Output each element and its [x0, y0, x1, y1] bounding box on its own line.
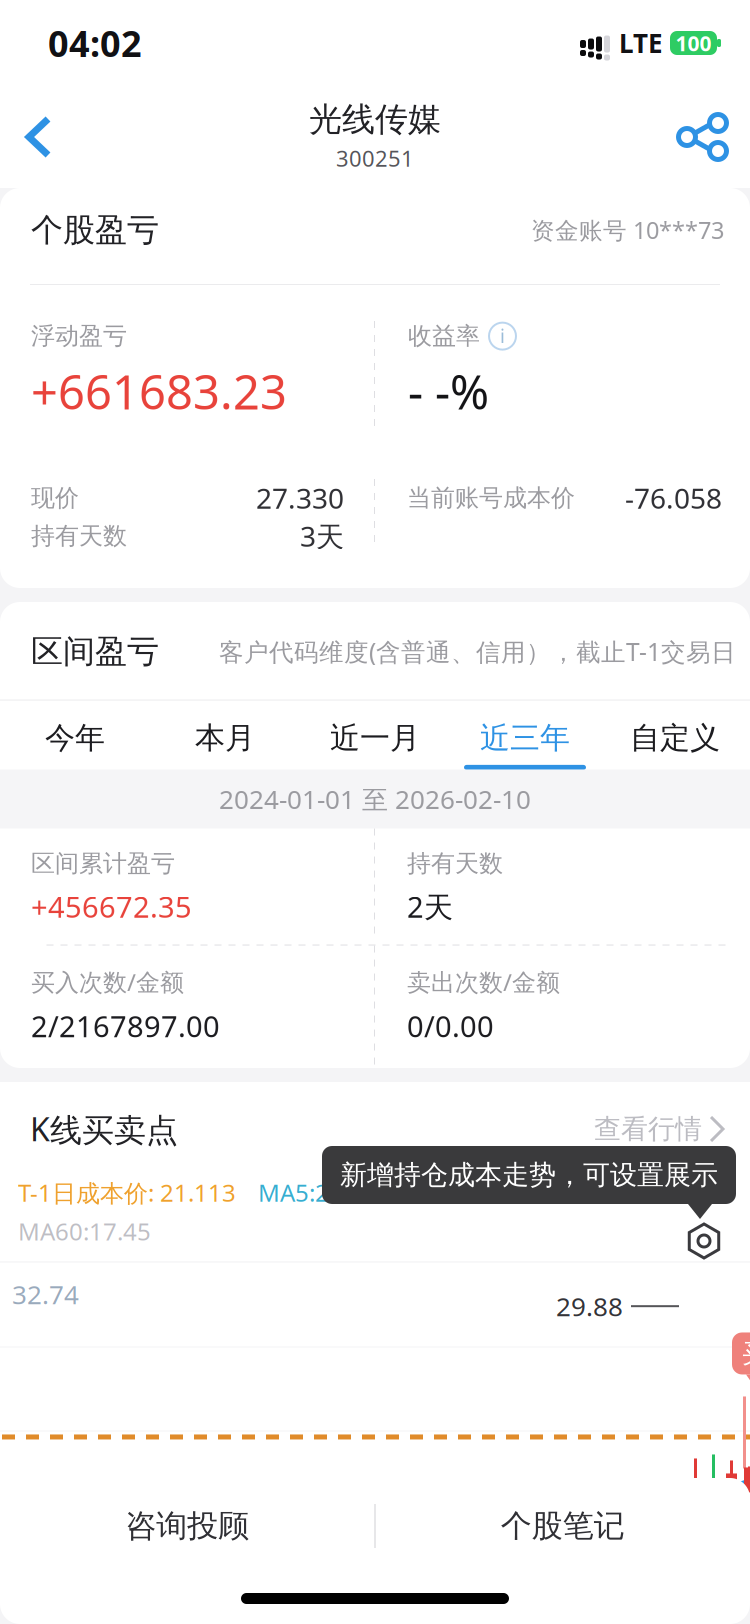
button[interactable]: 查看行情	[594, 1102, 728, 1156]
staticText: 32.74	[12, 1276, 79, 1312]
staticText: LTE	[619, 25, 663, 61]
staticText: 个股笔记	[501, 1506, 625, 1546]
button[interactable]: 近三年	[450, 700, 600, 769]
staticText: 100	[675, 29, 711, 57]
staticText: 2天	[407, 887, 453, 926]
staticText: 今年	[45, 719, 105, 757]
button[interactable]: 返回	[0, 89, 83, 185]
staticText: 客户代码维度(含普通、信用），截止T-1交易日	[219, 635, 736, 668]
staticText: -76.058	[625, 479, 722, 517]
staticText: 本月	[195, 719, 255, 757]
staticText: 27.330	[256, 479, 344, 517]
staticText: 买	[742, 1337, 750, 1370]
staticText: 现价	[31, 483, 79, 513]
staticText: 3天	[300, 517, 344, 555]
staticText: 持有天数	[31, 521, 127, 551]
staticText: 近一月	[330, 719, 420, 757]
staticText: MA10:21.22	[399, 1176, 532, 1209]
staticText: MA60:17.45	[18, 1215, 151, 1247]
staticText: 近三年	[480, 719, 570, 757]
staticText: T-1日成本价: 21.113	[18, 1176, 236, 1209]
staticText: - -%	[408, 359, 489, 423]
staticText: 新增持仓成本走势，可设置展示	[340, 1158, 718, 1192]
button[interactable]: 今年	[0, 700, 150, 769]
staticText: K线买卖点	[30, 1107, 178, 1151]
staticText: 个股盈亏	[31, 210, 159, 250]
staticText: 2024-01-01 至 2026-02-10	[219, 781, 531, 817]
staticText: +661683.23	[31, 359, 287, 423]
button[interactable]: 近一月	[300, 700, 450, 769]
staticText: 收益率	[408, 321, 480, 351]
button[interactable]: 分享	[650, 88, 750, 186]
staticText: 查看行情	[594, 1112, 702, 1146]
staticText: 0/0.00	[407, 1006, 494, 1046]
button[interactable]: 设置	[684, 1221, 736, 1261]
staticText: 咨询投顾	[125, 1506, 249, 1546]
staticText: 浮动盈亏	[31, 321, 127, 351]
staticText: MA20:19.30	[554, 1176, 687, 1209]
staticText: MA5:23.09	[258, 1176, 377, 1209]
staticText: 04:02	[48, 18, 142, 67]
staticText: +456672.35	[31, 887, 192, 926]
button[interactable]: 个股笔记	[375, 1478, 750, 1574]
staticText: 区间盈亏	[31, 631, 159, 672]
staticText: 买入次数/金额	[31, 965, 184, 998]
staticText: 29.88	[556, 1288, 623, 1324]
staticText: 自定义	[630, 719, 720, 757]
staticText: i	[500, 323, 505, 349]
button[interactable]: 咨询投顾	[0, 1478, 374, 1574]
staticText: 当前账号成本价	[407, 483, 575, 513]
staticText: 区间累计盈亏	[31, 848, 175, 879]
button[interactable]: 本月	[150, 700, 300, 769]
staticText: 卖出次数/金额	[407, 965, 560, 998]
staticText: 持有天数	[407, 848, 503, 879]
staticText: 2/2167897.00	[31, 1006, 220, 1046]
staticText: 光线传媒	[309, 99, 441, 140]
staticText: 300251	[336, 143, 414, 173]
button[interactable]: 自定义	[600, 700, 750, 769]
staticText: 资金账号 10***73	[531, 214, 724, 246]
